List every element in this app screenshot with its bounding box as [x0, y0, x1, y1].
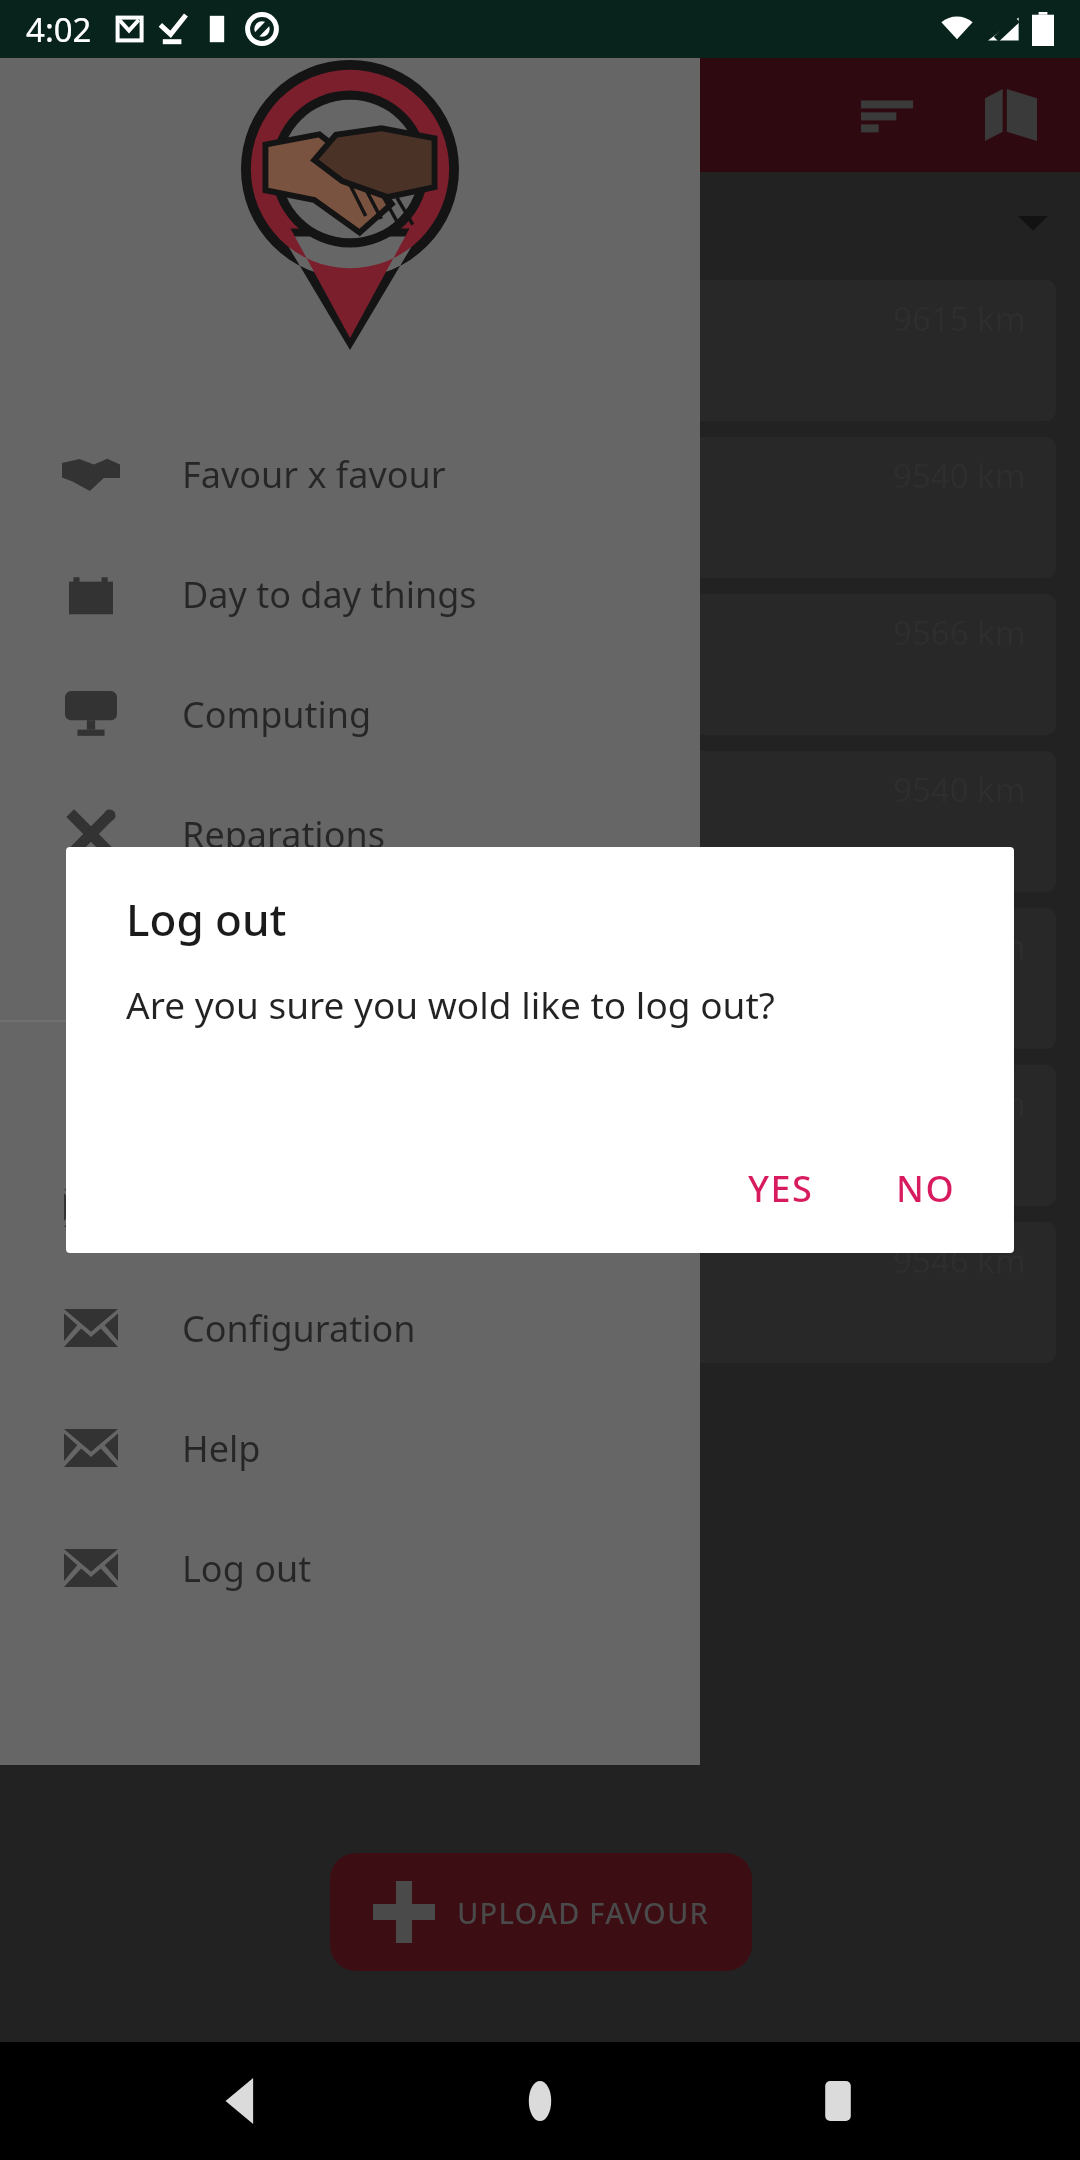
staticText: NO: [896, 1164, 956, 1213]
staticText: YES: [748, 1164, 814, 1213]
button[interactable]: 9556 km: [24, 908, 1056, 1049]
button[interactable]: 9540 km: [24, 437, 1056, 578]
staticText: 9552 km: [893, 1081, 1026, 1126]
staticText: 9546 km: [893, 1238, 1026, 1283]
staticText: Favour x favour: [182, 450, 446, 499]
staticText: Day to day things: [182, 570, 477, 619]
button[interactable]: Other: [0, 894, 700, 1014]
button[interactable]: Computing: [0, 654, 700, 774]
staticText: Log out: [182, 1544, 312, 1593]
button[interactable]: Recent apps: [783, 2046, 893, 2156]
button[interactable]: 9540 km: [24, 751, 1056, 892]
staticText: ar mobles: [204, 826, 392, 880]
button[interactable]: UPLOAD FAVOUR: [330, 1853, 752, 1971]
staticText: matica: [204, 983, 331, 1037]
button[interactable]: NO: [874, 1144, 978, 1233]
button[interactable]: Back: [188, 2046, 298, 2156]
staticText: Configuration: [182, 1304, 416, 1353]
button[interactable]: Log out: [0, 1508, 700, 1628]
button[interactable]: Configuration: [0, 1268, 700, 1388]
button[interactable]: 9546 km: [24, 1222, 1056, 1363]
button[interactable]: 9615 km: [24, 280, 1056, 421]
button[interactable]: Favour x favour: [0, 414, 700, 534]
staticText: Log out: [126, 889, 287, 949]
button[interactable]: YES: [726, 1144, 836, 1233]
staticText: Computing: [182, 690, 372, 739]
button[interactable]: Messages: [0, 1148, 700, 1268]
staticText: Are you sure you wold like to log out?: [126, 979, 775, 1029]
button[interactable]: Sort: [844, 72, 930, 158]
button[interactable]: Home: [485, 2046, 595, 2156]
staticText: Reparations: [182, 810, 385, 859]
staticText: 9556 km: [893, 924, 1026, 969]
button[interactable]: Option: [0, 1028, 700, 1148]
staticText: Help: [182, 1424, 261, 1473]
button[interactable]: 9552 km: [24, 1065, 1056, 1206]
button[interactable]: Day to day things: [0, 534, 700, 654]
staticText: UPLOAD FAVOUR: [457, 1893, 710, 1932]
button[interactable]: Help: [0, 1388, 700, 1508]
staticText: eria: [204, 669, 276, 723]
button[interactable]: Reparations: [0, 774, 700, 894]
button[interactable]: Map: [968, 72, 1054, 158]
staticText: 4:02: [26, 7, 92, 52]
staticText: Other: [182, 930, 281, 979]
button[interactable]: 9566 km: [24, 594, 1056, 735]
